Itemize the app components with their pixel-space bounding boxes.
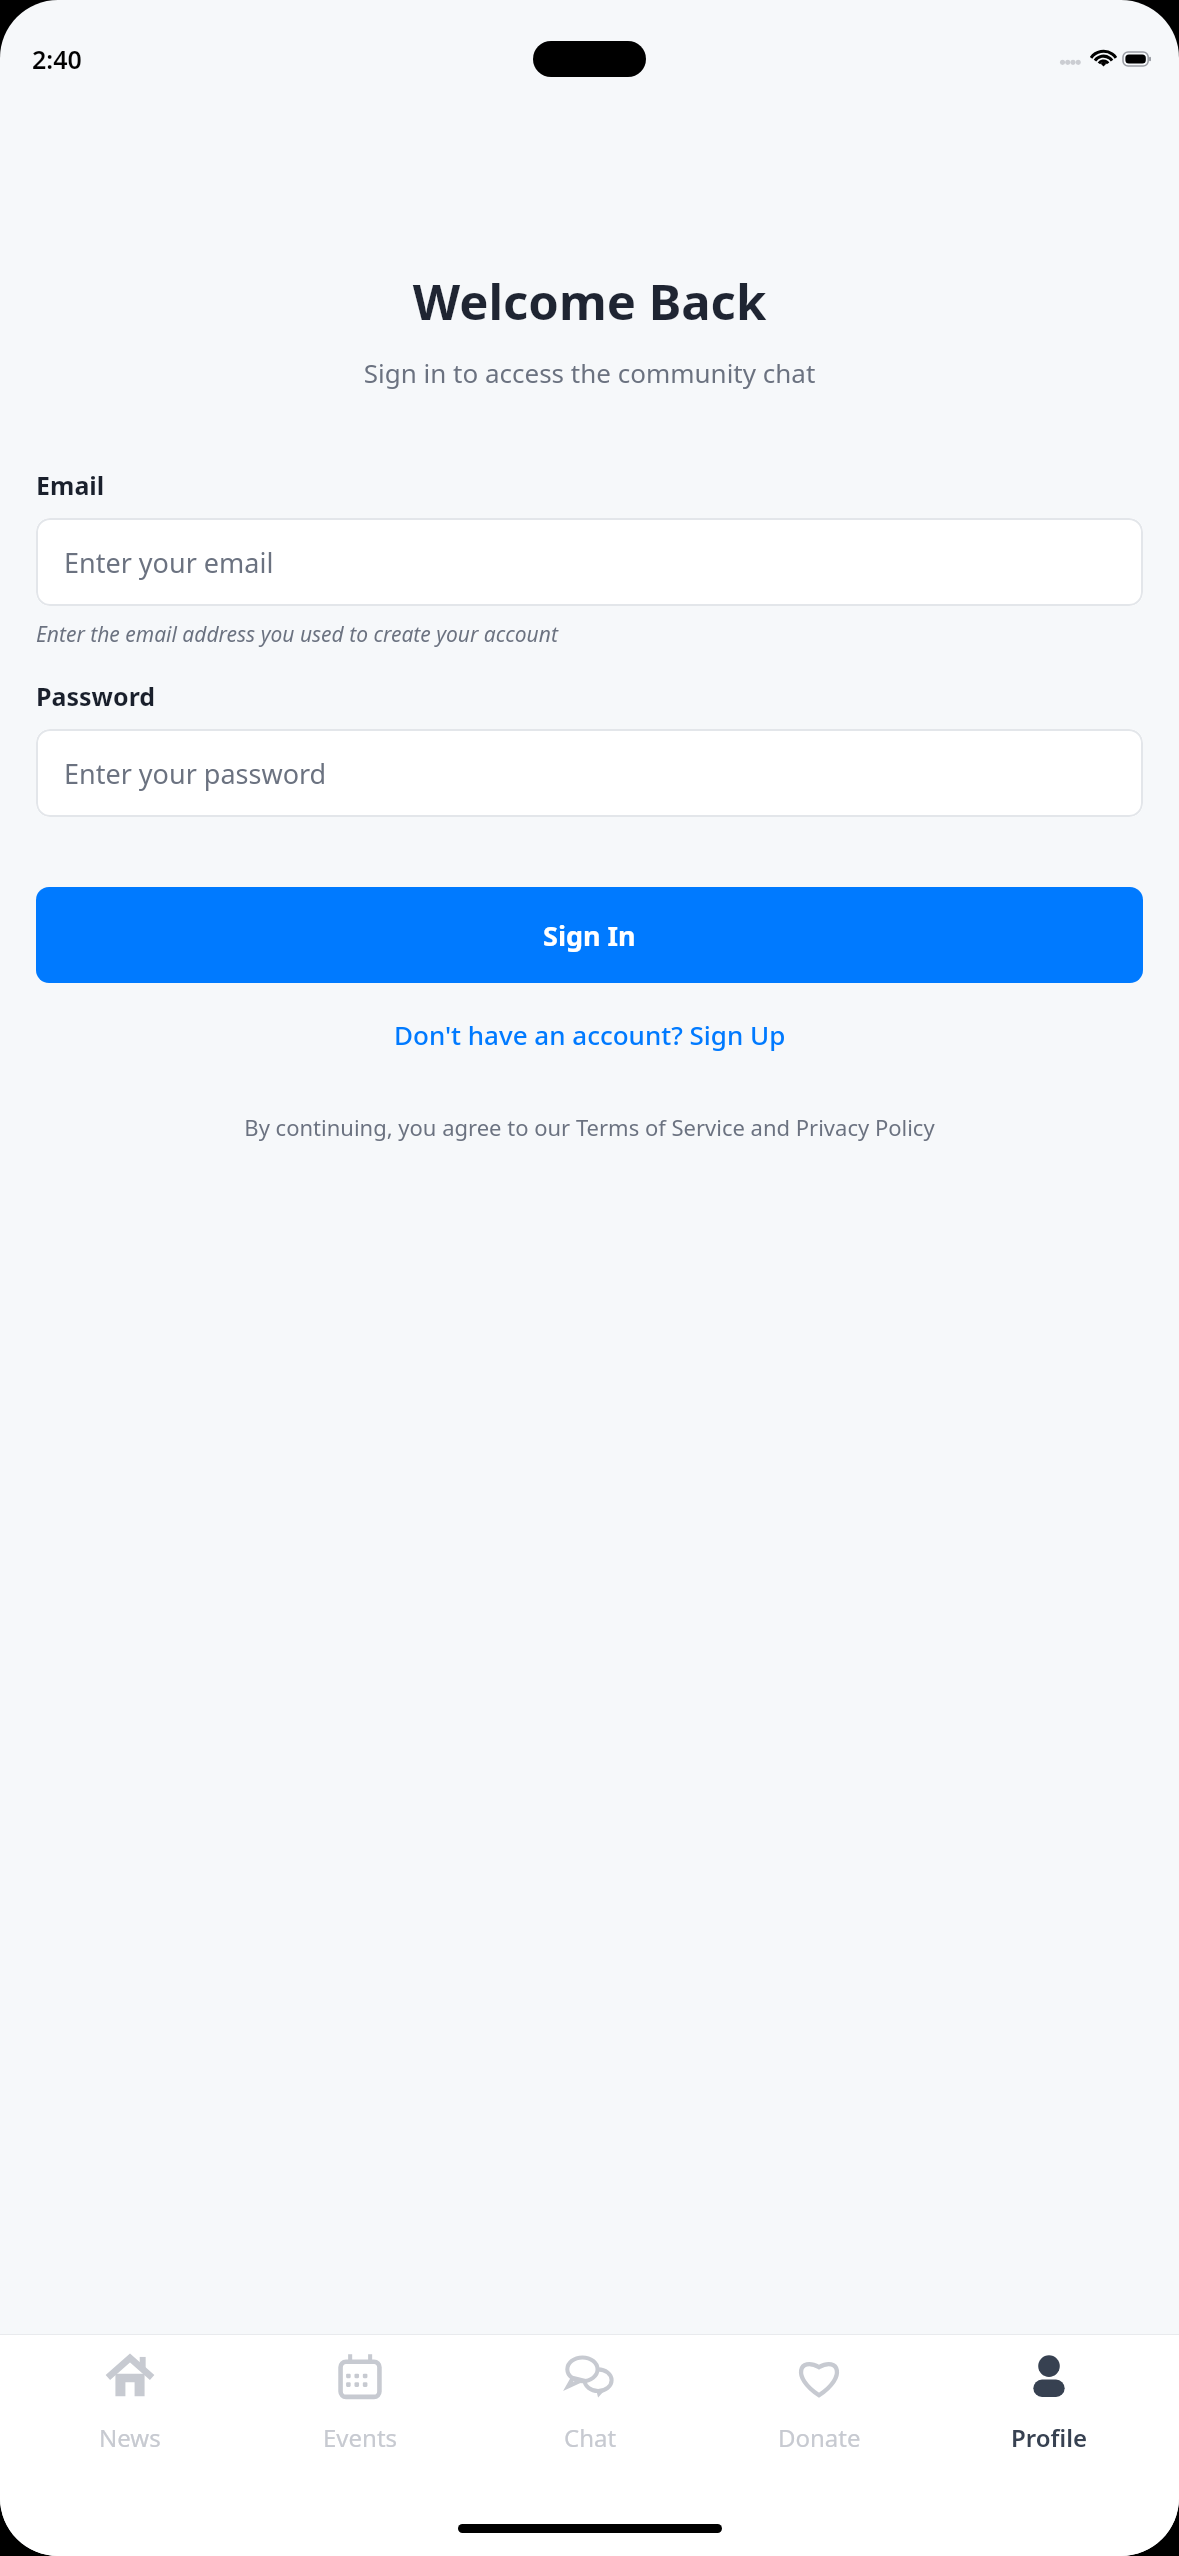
- staticText: Enter your password: [64, 755, 327, 792]
- staticText: Enter the email address you used to crea…: [36, 620, 558, 649]
- staticText: Chat: [564, 2421, 617, 2454]
- button[interactable]: Profile: [949, 2335, 1149, 2454]
- button[interactable]: Donate: [719, 2335, 919, 2454]
- button[interactable]: Chat: [490, 2335, 690, 2454]
- staticText: Donate: [778, 2421, 861, 2454]
- staticText: 2:40: [32, 42, 82, 76]
- staticText: Enter your email: [64, 544, 274, 581]
- staticText: Don't have an account? Sign Up: [394, 1017, 786, 1052]
- button[interactable]: Events: [260, 2335, 460, 2454]
- staticText: Sign in to access the community chat: [36, 355, 1143, 390]
- staticText: Events: [323, 2421, 398, 2454]
- button[interactable]: Don't have an account? Sign Up: [36, 1009, 1143, 1060]
- staticText: Email: [36, 468, 105, 502]
- staticText: By continuing, you agree to our Terms of…: [40, 1112, 1139, 1142]
- button[interactable]: Sign In: [36, 887, 1143, 983]
- button[interactable]: News: [30, 2335, 230, 2454]
- staticText: Password: [36, 679, 156, 713]
- staticText: Sign In: [543, 917, 636, 954]
- staticText: News: [99, 2421, 161, 2454]
- staticText: Welcome Back: [36, 268, 1143, 335]
- button[interactable]: Enter your password: [36, 729, 1143, 817]
- button[interactable]: Enter your email: [36, 518, 1143, 606]
- staticText: Profile: [1011, 2421, 1088, 2454]
